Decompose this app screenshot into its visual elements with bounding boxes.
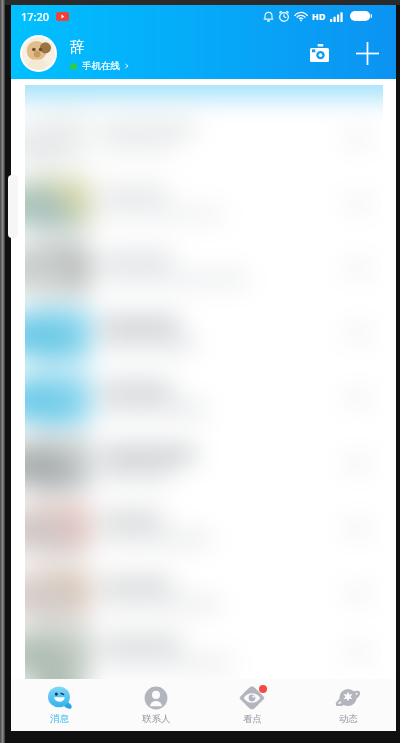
staticText: 消息	[50, 713, 69, 725]
staticText: 手机在线	[82, 60, 120, 72]
button[interactable]	[25, 431, 383, 496]
button[interactable]	[25, 236, 383, 301]
staticText: 辞	[70, 38, 85, 57]
staticText: 动态	[339, 713, 358, 725]
staticText: 联系人	[142, 713, 171, 725]
button[interactable]	[25, 106, 383, 171]
button[interactable]	[25, 561, 383, 626]
button[interactable]: Profile avatar	[20, 35, 57, 72]
staticText: 17:20	[21, 9, 50, 24]
button[interactable]: Add	[348, 34, 386, 72]
button[interactable]: 动态	[300, 679, 396, 731]
button[interactable]: 看点	[204, 679, 300, 731]
button[interactable]	[25, 366, 383, 431]
button[interactable]: 联系人	[108, 679, 204, 731]
staticText: HD	[312, 10, 326, 22]
staticText: 看点	[243, 713, 262, 725]
button[interactable]	[25, 496, 383, 561]
button[interactable]: Open drawer	[8, 175, 18, 238]
button[interactable]: 手机在线	[70, 60, 130, 72]
button[interactable]: Camera	[300, 34, 338, 72]
button[interactable]: 消息	[11, 679, 108, 731]
button[interactable]	[25, 301, 383, 366]
button[interactable]	[25, 171, 383, 236]
button[interactable]	[25, 626, 383, 679]
